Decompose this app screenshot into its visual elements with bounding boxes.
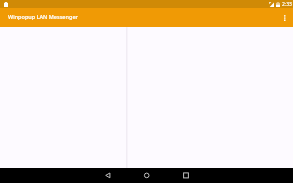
button[interactable]: Back: [100, 168, 115, 183]
button[interactable]: More options: [277, 8, 293, 27]
button[interactable]: Recent apps: [178, 168, 193, 183]
staticText: 2:33: [282, 1, 292, 8]
button[interactable]: Home: [139, 168, 154, 183]
staticText: Winpopup LAN Messenger: [8, 13, 78, 20]
